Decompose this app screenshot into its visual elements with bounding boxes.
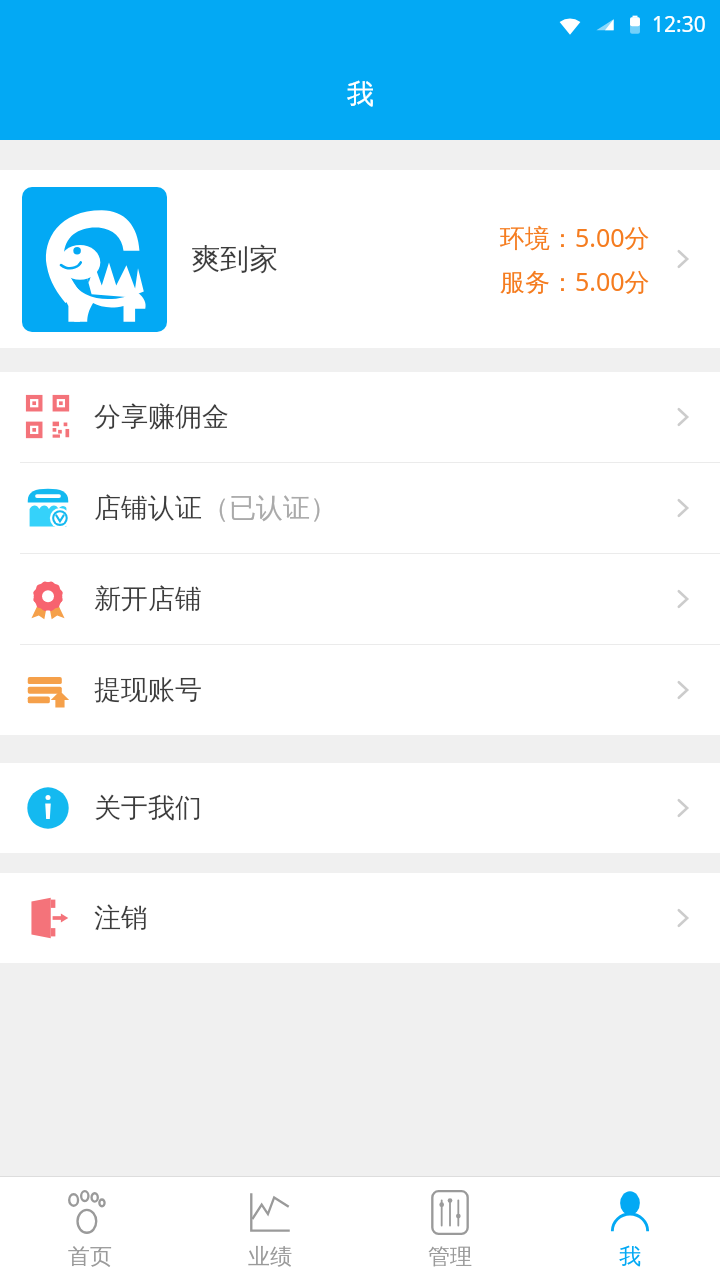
button[interactable]: 爽到家: [0, 170, 720, 348]
staticText: 店铺认证: [94, 491, 202, 525]
button[interactable]: 业绩: [180, 1177, 360, 1280]
other: 首页: [64, 1187, 116, 1239]
button[interactable]: 店铺认证: [0, 463, 720, 553]
staticText: 提现账号: [94, 673, 202, 707]
staticText: 12:30: [652, 10, 706, 39]
staticText: 管理: [428, 1243, 472, 1271]
staticText: 注销: [94, 901, 148, 935]
button[interactable]: 新开店铺: [0, 554, 720, 644]
staticText: 服务：5.00分: [500, 264, 650, 298]
staticText: 我: [619, 1243, 641, 1271]
staticText: 我: [347, 77, 374, 111]
staticText: 环境：5.00分: [500, 220, 650, 254]
staticText: 首页: [68, 1243, 112, 1271]
button[interactable]: 管理: [360, 1177, 540, 1280]
other: 业绩: [244, 1187, 296, 1239]
button[interactable]: 我: [540, 1177, 720, 1280]
staticText: 爽到家: [191, 241, 278, 278]
other: 管理: [424, 1187, 476, 1239]
button[interactable]: 关于我们: [0, 763, 720, 853]
button[interactable]: 分享赚佣金: [0, 372, 720, 462]
staticText: （已认证）: [202, 491, 337, 525]
button[interactable]: 首页: [0, 1177, 180, 1280]
other: 我: [604, 1187, 656, 1239]
button[interactable]: 注销: [0, 873, 720, 963]
staticText: 关于我们: [94, 791, 202, 825]
staticText: 业绩: [248, 1243, 292, 1271]
button[interactable]: 提现账号: [0, 645, 720, 735]
staticText: 新开店铺: [94, 582, 202, 616]
staticText: 分享赚佣金: [94, 400, 229, 434]
